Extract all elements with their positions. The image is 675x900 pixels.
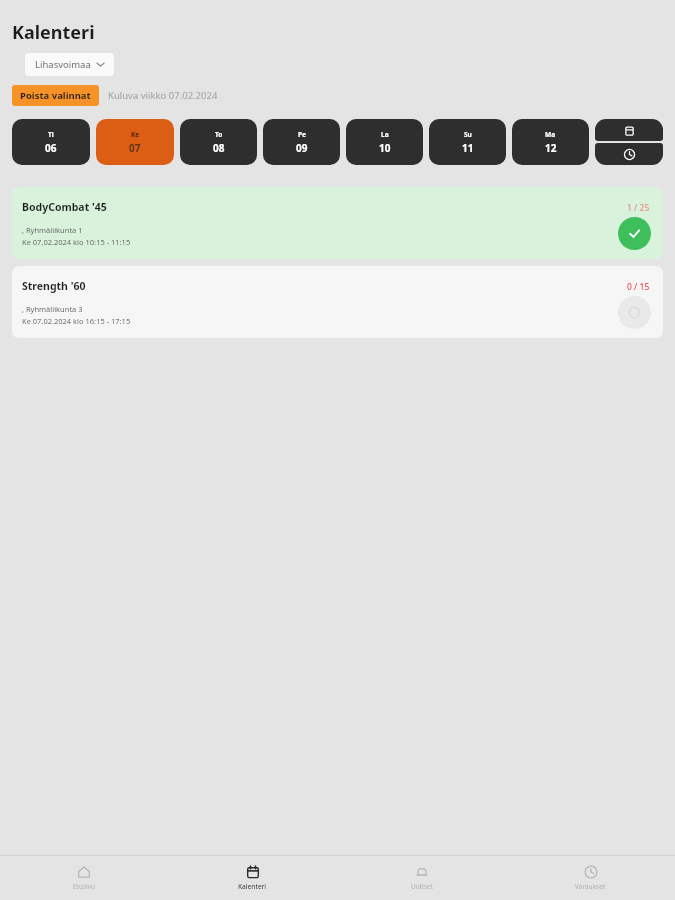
- button[interactable]: BodyCombat '45: [12, 187, 663, 259]
- button[interactable]: Varaa: [618, 296, 651, 329]
- staticText: Ti: [48, 130, 54, 139]
- button[interactable]: Su: [429, 119, 506, 165]
- staticText: 12: [545, 141, 557, 155]
- staticText: Ke: [131, 130, 140, 139]
- button[interactable]: Aikataulu: [595, 143, 663, 165]
- button[interactable]: Ke: [96, 119, 174, 165]
- button[interactable]: Ma: [512, 119, 589, 165]
- staticText: Ke 07.02.2024 klo 16:15 - 17:15: [22, 316, 131, 326]
- staticText: Poista valinnat: [20, 89, 91, 102]
- staticText: 0 / 15: [627, 281, 650, 293]
- button[interactable]: La: [346, 119, 423, 165]
- staticText: Uutiset: [411, 882, 433, 891]
- button[interactable]: Etusivu: [0, 861, 168, 895]
- staticText: Varaukset: [575, 882, 606, 891]
- button[interactable]: Pe: [263, 119, 340, 165]
- button[interactable]: Lihasvoimaa: [25, 53, 114, 76]
- staticText: Strength '60: [22, 279, 86, 293]
- staticText: , Ryhmäliikunta 3: [22, 304, 83, 314]
- staticText: Etusivu: [73, 882, 96, 891]
- staticText: 11: [462, 141, 474, 155]
- button[interactable]: Uutiset: [337, 861, 506, 895]
- staticText: 09: [296, 141, 308, 155]
- staticText: To: [215, 130, 223, 139]
- staticText: 10: [379, 141, 391, 155]
- staticText: , Ryhmäliikunta 1: [22, 225, 83, 235]
- button[interactable]: Peruuta varaus: [618, 217, 651, 250]
- button[interactable]: Valitse päivä: [595, 119, 663, 141]
- staticText: La: [381, 130, 389, 139]
- staticText: 08: [213, 141, 225, 155]
- button[interactable]: Strength '60: [12, 266, 663, 338]
- button[interactable]: Poista valinnat: [12, 85, 99, 106]
- staticText: Kalenteri: [238, 882, 267, 891]
- staticText: Kuluva viikko 07.02.2024: [108, 89, 218, 102]
- staticText: Su: [464, 130, 472, 139]
- staticText: BodyCombat '45: [22, 200, 107, 214]
- staticText: Lihasvoimaa: [35, 58, 91, 71]
- button[interactable]: Ti: [12, 119, 90, 165]
- staticText: Kalenteri: [12, 20, 95, 45]
- staticText: 1 / 25: [627, 202, 650, 214]
- button[interactable]: Kalenteri: [168, 861, 337, 895]
- staticText: Ma: [545, 130, 556, 139]
- button[interactable]: Varaukset: [506, 861, 675, 895]
- staticText: 06: [45, 141, 57, 155]
- staticText: 07: [129, 141, 141, 155]
- button[interactable]: To: [180, 119, 257, 165]
- staticText: Pe: [298, 130, 306, 139]
- staticText: Ke 07.02.2024 klo 10:15 - 11:15: [22, 237, 131, 247]
